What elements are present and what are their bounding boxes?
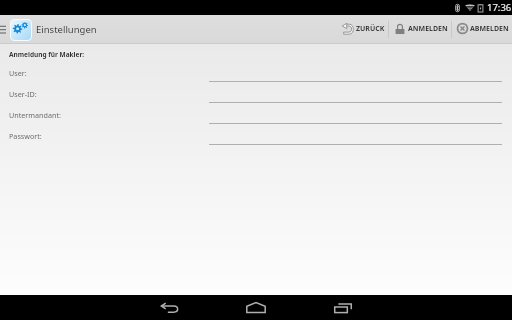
button[interactable]: ABMELDEN bbox=[452, 15, 512, 44]
other: Navigation bbox=[0, 26, 6, 35]
staticText: Anmeldung für Makler: bbox=[9, 50, 85, 59]
button[interactable] bbox=[209, 85, 502, 103]
button[interactable] bbox=[209, 106, 502, 124]
staticText: 17:36 bbox=[487, 1, 512, 14]
button[interactable]: ZURÜCK bbox=[337, 15, 388, 44]
button[interactable]: Home bbox=[230, 295, 282, 320]
staticText: Passwort: bbox=[9, 131, 42, 141]
staticText: ZURÜCK bbox=[356, 24, 385, 34]
staticText: Untermandant: bbox=[9, 110, 61, 120]
button[interactable]: ANMELDEN bbox=[389, 15, 451, 44]
button[interactable]: Navigation bbox=[0, 19, 32, 41]
staticText: User-ID: bbox=[9, 89, 37, 99]
button[interactable]: Recents bbox=[317, 295, 369, 320]
button[interactable] bbox=[209, 127, 502, 145]
staticText: User: bbox=[9, 68, 27, 78]
button[interactable] bbox=[209, 64, 502, 82]
staticText: ABMELDEN bbox=[470, 24, 509, 34]
button[interactable]: Back bbox=[144, 295, 196, 320]
staticText: ANMELDEN bbox=[408, 24, 448, 34]
staticText: Einstellungen bbox=[36, 23, 97, 36]
